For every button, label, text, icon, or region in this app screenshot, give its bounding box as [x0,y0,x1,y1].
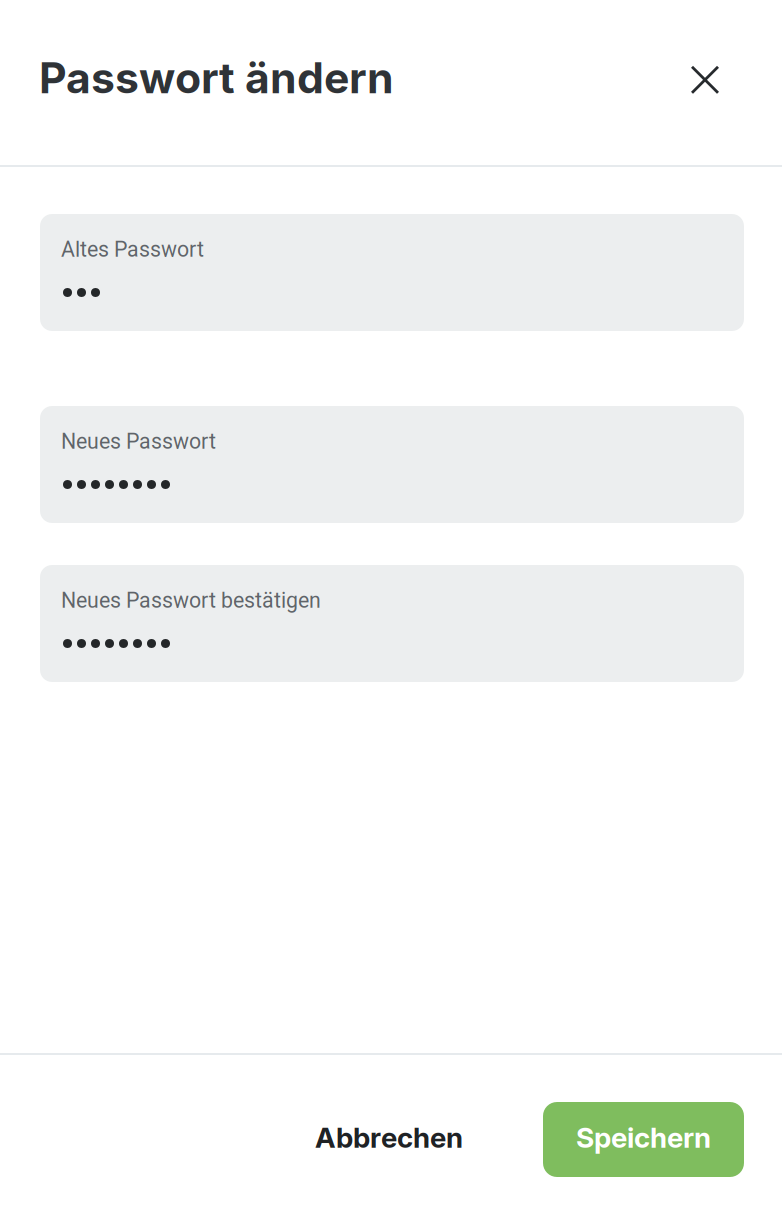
staticText: Neues Passwort [61,429,216,454]
staticText: Neues Passwort bestätigen [61,588,321,613]
button[interactable]: Speichern [543,1102,744,1177]
staticText: Speichern [576,1121,711,1154]
staticText: Altes Passwort [61,237,204,262]
button[interactable]: Schließen [683,56,727,100]
staticText: Abbrechen [315,1121,463,1154]
staticText: Passwort ändern [39,52,394,104]
button[interactable]: Abbrechen [309,1102,469,1177]
